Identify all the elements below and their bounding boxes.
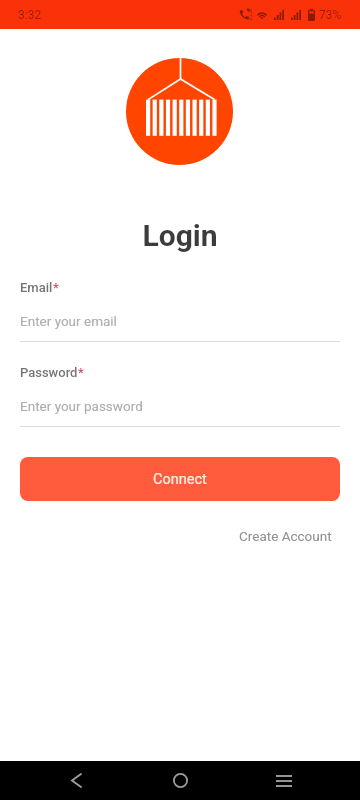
staticText: 3:32 (18, 8, 42, 22)
staticText: 2 (249, 14, 253, 22)
staticText: * (53, 280, 59, 295)
button[interactable]: Back (56, 761, 97, 800)
staticText: Connect (153, 471, 207, 488)
button[interactable]: Enter your email (20, 306, 340, 342)
staticText: Enter your password (20, 398, 143, 414)
staticText: Enter your email (20, 313, 117, 329)
staticText: * (78, 365, 84, 380)
staticText: Login (0, 218, 360, 253)
button[interactable]: Create Account (231, 520, 340, 552)
staticText: Password (20, 365, 78, 380)
button[interactable]: Connect (20, 457, 340, 501)
button[interactable]: Enter your password (20, 391, 340, 427)
staticText: 1 (249, 8, 253, 16)
button[interactable]: Home (160, 761, 200, 800)
staticText: 73% (319, 8, 342, 22)
staticText: Email (20, 280, 53, 295)
staticText: Create Account (239, 528, 332, 544)
button[interactable]: Recent apps (263, 761, 304, 800)
other: App logo (126, 58, 233, 165)
